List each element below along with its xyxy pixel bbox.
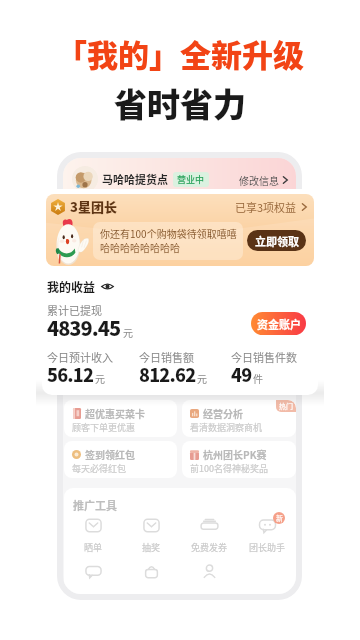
staticText: 杭州团长PK赛 [203,447,267,461]
button[interactable]: 签到领红包 [64,441,177,478]
staticText: 你还有100个购物袋待领取嘻嘻 [100,226,237,240]
button[interactable]: 杭州团长PK赛 [182,441,296,478]
staticText: 资金账户 [257,316,301,332]
button[interactable] [180,561,238,582]
staticText: 今日销售额 [139,349,194,365]
staticText: 签到领红包 [85,447,135,461]
staticText: 元 [95,371,105,385]
staticText: 省时省力 [114,79,246,127]
staticText: 晒单 [84,541,103,554]
button[interactable]: 我的收益 [47,278,114,295]
staticText: 今日预计收入 [47,349,113,365]
staticText: 元 [123,325,133,339]
staticText: 哈哈哈哈哈哈哈哈 [100,240,180,254]
staticText: 每天必得红包 [72,462,127,475]
button[interactable] [122,561,180,582]
staticText: 超优惠买菜卡 [85,406,145,420]
staticText: 营业中 [177,173,205,186]
staticText: 已享3项权益 [235,199,297,215]
staticText: 我的收益 [47,278,96,295]
button[interactable]: 今日销售额 [134,349,226,383]
staticText: 4839.45 [47,313,121,342]
staticText: 元 [197,371,207,385]
button[interactable]: 晒单 [64,515,122,554]
other: Toggle earnings visibility [101,280,114,293]
button[interactable]: 修改信息 [239,173,289,187]
button[interactable]: 抽奖 [122,515,180,554]
staticText: 马哈哈提货点 [102,171,168,187]
staticText: 抽奖 [142,541,161,554]
button[interactable]: 立即领取 [247,230,306,251]
button[interactable]: 免费发券 [180,515,238,554]
staticText: 3星团长 [70,197,117,216]
staticText: 812.62 [139,361,196,387]
staticText: 看清数据洞察商机 [190,421,263,434]
staticText: 今日销售件数 [231,349,297,365]
button[interactable] [64,561,122,582]
staticText: 经营分析 [203,406,243,420]
staticText: 顾客下单更优惠 [72,421,136,434]
staticText: 修改信息 [239,173,279,187]
button[interactable]: 经营分析 [182,400,296,437]
staticText: 累计已提现 [47,302,102,318]
staticText: 件 [253,371,263,385]
staticText: 立即领取 [255,233,299,249]
staticText: 免费发券 [191,541,228,554]
staticText: 热门 [279,401,293,411]
staticText: 团长助手 [249,541,286,554]
button[interactable]: 已享3项权益 [235,199,308,215]
button[interactable]: 资金账户 [251,312,306,335]
staticText: 「我的」全新升级 [56,31,304,76]
button[interactable]: 新 [238,515,296,554]
staticText: 新 [276,513,283,523]
button[interactable]: 超优惠买菜卡 [64,400,177,437]
button[interactable]: 今日预计收入 [42,349,134,383]
staticText: 56.12 [47,361,94,387]
staticText: 推广工具 [73,497,117,513]
staticText: 前100名得神秘奖品 [190,462,268,475]
button[interactable]: 今日销售件数 [226,349,318,383]
staticText: 49 [231,361,252,387]
